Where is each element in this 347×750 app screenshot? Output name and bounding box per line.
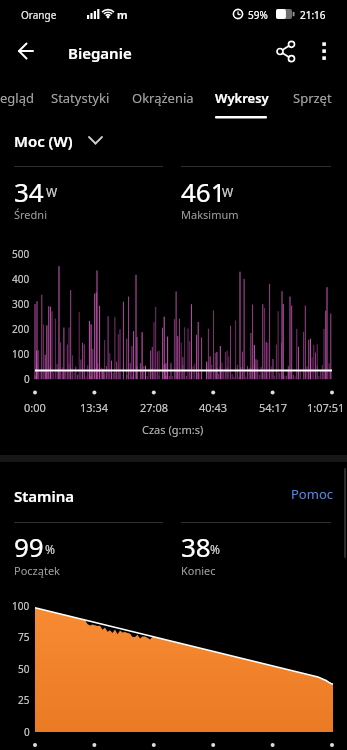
staticText: %	[210, 541, 220, 557]
staticText: Maksimum	[181, 207, 239, 222]
button[interactable]: Wykresy	[215, 89, 269, 107]
staticText: 25	[18, 693, 30, 707]
staticText: 500	[12, 247, 30, 261]
button[interactable]	[10, 37, 42, 65]
staticText: 38	[181, 529, 211, 564]
staticText: 99	[14, 529, 44, 564]
button[interactable]: Okrążenia	[132, 89, 194, 107]
staticText: 300	[12, 297, 30, 311]
staticText: Moc (W)	[14, 131, 73, 151]
staticText: 100	[12, 599, 30, 613]
staticText: 34	[14, 174, 44, 209]
button[interactable]	[270, 38, 302, 65]
staticText: m	[117, 7, 128, 22]
staticText: 0:00	[24, 400, 46, 415]
button[interactable]	[312, 38, 337, 65]
staticText: 40:43	[199, 400, 228, 415]
staticText: 59%	[248, 8, 268, 22]
staticText: %	[45, 541, 55, 557]
staticText: Stamina	[14, 486, 75, 506]
staticText: Koniec	[181, 563, 216, 578]
staticText: 54:17	[259, 400, 288, 415]
staticText: Średni	[14, 207, 47, 222]
staticText: 0	[24, 725, 30, 739]
button[interactable]: Sprzęt	[293, 89, 332, 107]
staticText: 50	[18, 662, 30, 676]
staticText: 400	[12, 272, 30, 286]
staticText: 21:16	[300, 8, 326, 22]
staticText: 200	[12, 322, 30, 336]
staticText: 27:08	[140, 400, 169, 415]
button[interactable]: Moc (W)	[14, 131, 153, 151]
staticText: Czas (g:m:s)	[142, 422, 204, 437]
staticText: 461	[181, 174, 226, 209]
staticText: Orange	[21, 8, 57, 22]
staticText: 75	[18, 630, 30, 644]
staticText: Bieganie	[68, 43, 132, 63]
staticText: Pomoc	[291, 485, 333, 503]
staticText: W	[222, 184, 234, 200]
button[interactable]: egląd	[0, 89, 34, 107]
staticText: 1:07:51	[307, 400, 345, 415]
staticText: Początek	[14, 563, 60, 578]
staticText: 100	[12, 347, 30, 361]
staticText: 13:34	[80, 400, 109, 415]
button[interactable]: Pomoc	[243, 484, 333, 504]
staticText: W	[46, 184, 58, 200]
button[interactable]: Statystyki	[51, 89, 110, 107]
staticText: 0	[24, 372, 30, 386]
